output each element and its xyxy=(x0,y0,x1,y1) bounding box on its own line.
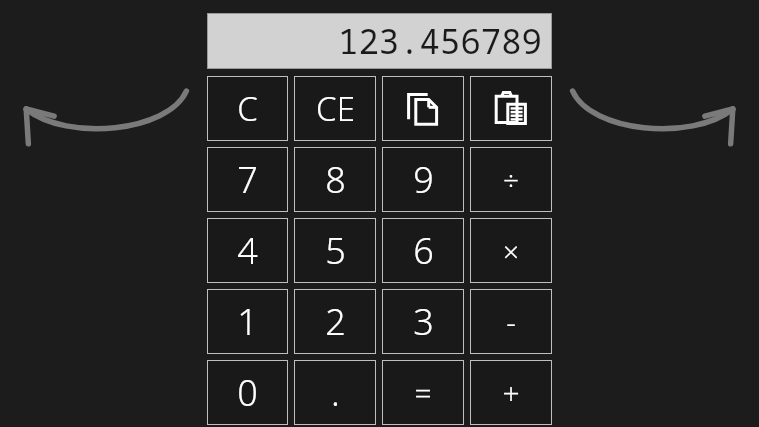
staticText: 3 xyxy=(413,297,434,346)
button[interactable]: Paste xyxy=(470,76,552,141)
button[interactable]: × xyxy=(470,218,552,283)
staticText: 2 xyxy=(325,297,346,346)
staticText: C xyxy=(237,86,258,131)
button[interactable]: 3 xyxy=(382,289,464,354)
button[interactable]: C xyxy=(207,76,288,141)
button[interactable]: 5 xyxy=(294,218,376,283)
staticText: 4 xyxy=(237,226,258,275)
button[interactable]: 8 xyxy=(294,147,376,212)
staticText: ÷ xyxy=(503,161,519,199)
button[interactable]: 1 xyxy=(207,289,288,354)
staticText: 7 xyxy=(237,155,258,204)
button[interactable]: CE xyxy=(294,76,376,141)
staticText: 0 xyxy=(237,368,258,417)
staticText: CE xyxy=(316,86,355,131)
button[interactable]: 9 xyxy=(382,147,464,212)
button[interactable]: 7 xyxy=(207,147,288,212)
staticText: 6 xyxy=(413,226,434,275)
button[interactable]: . xyxy=(294,360,376,425)
staticText: + xyxy=(502,372,520,413)
button[interactable]: 0 xyxy=(207,360,288,425)
staticText: 9 xyxy=(413,155,434,204)
staticText: - xyxy=(506,301,516,342)
staticText: 5 xyxy=(325,226,346,275)
button[interactable]: 4 xyxy=(207,218,288,283)
button[interactable]: Copy xyxy=(382,76,464,141)
button[interactable]: 123.456789 xyxy=(207,13,552,69)
staticText: × xyxy=(503,232,519,270)
button[interactable]: 6 xyxy=(382,218,464,283)
staticText: 123.456789 xyxy=(338,18,542,64)
button[interactable]: = xyxy=(382,360,464,425)
button[interactable]: + xyxy=(470,360,552,425)
staticText: 1 xyxy=(237,297,258,346)
button[interactable]: 2 xyxy=(294,289,376,354)
button[interactable]: - xyxy=(470,289,552,354)
button[interactable]: ÷ xyxy=(470,147,552,212)
staticText: . xyxy=(331,368,340,417)
staticText: 8 xyxy=(325,155,346,204)
staticText: = xyxy=(414,372,432,413)
